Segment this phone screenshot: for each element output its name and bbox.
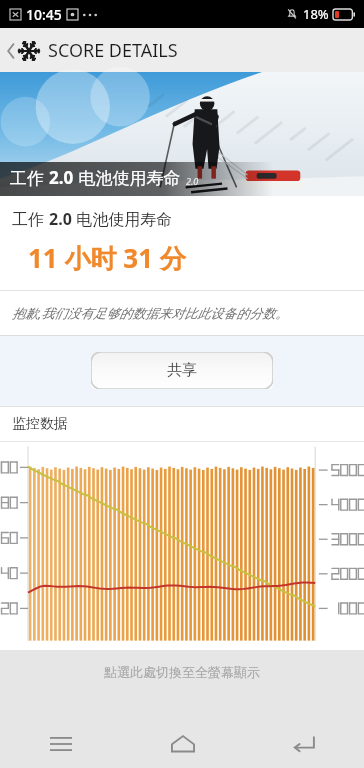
staticText: 监控数据 bbox=[12, 415, 68, 433]
staticText: 11 小时 31 分 bbox=[28, 240, 186, 276]
button[interactable]: Back bbox=[243, 720, 364, 768]
button[interactable]: Home bbox=[122, 720, 243, 768]
staticText: 共享 bbox=[167, 361, 197, 380]
staticText: 10:45 bbox=[26, 5, 62, 24]
staticText: 2.0 bbox=[49, 166, 74, 189]
staticText: 2.0 bbox=[49, 208, 72, 230]
staticText: 工作 bbox=[12, 208, 49, 230]
button[interactable]: 共享 bbox=[91, 352, 273, 389]
staticText: 18% bbox=[303, 5, 329, 23]
button[interactable]: Back bbox=[0, 32, 188, 69]
button[interactable]: Recent apps bbox=[0, 720, 122, 768]
staticText: 抱歉,我们没有足够的数据来对比此设备的分数。 bbox=[12, 304, 289, 322]
staticText: 2.0 bbox=[186, 175, 199, 187]
staticText: 點選此處切換至全螢幕顯示 bbox=[104, 664, 260, 680]
staticText: SCORE DETAILS bbox=[48, 38, 178, 63]
button[interactable] bbox=[0, 442, 364, 650]
staticText: 工作 bbox=[10, 166, 49, 189]
staticText: 电池使用寿命 bbox=[74, 166, 181, 189]
staticText: 电池使用寿命 bbox=[72, 208, 173, 230]
